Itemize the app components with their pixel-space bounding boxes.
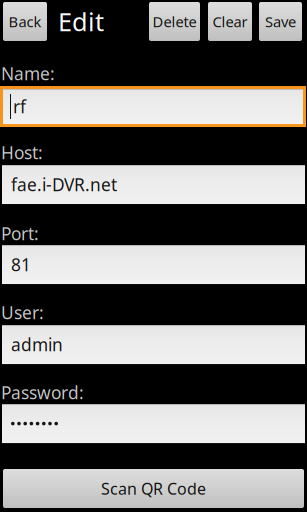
staticText: rf	[13, 95, 26, 118]
staticText: Back	[8, 12, 41, 31]
button[interactable]: 81	[2, 245, 305, 284]
button[interactable]	[2, 404, 305, 443]
button[interactable]: rf	[0, 86, 306, 127]
staticText: admin	[11, 333, 63, 356]
staticText: Host:	[1, 141, 43, 164]
staticText: Port:	[1, 222, 39, 245]
staticText: Edit	[58, 5, 104, 38]
staticText: Clear	[212, 12, 247, 31]
button[interactable]: Clear	[208, 2, 252, 41]
button[interactable]: Back	[3, 2, 47, 41]
staticText: Scan QR Code	[101, 478, 206, 499]
staticText: Save	[265, 12, 296, 31]
button[interactable]: fae.i-DVR.net	[2, 165, 305, 204]
staticText: Name:	[1, 62, 55, 85]
button[interactable]: Scan QR Code	[0, 469, 307, 512]
staticText: Delete	[152, 12, 196, 31]
staticText: User:	[1, 301, 44, 324]
staticText: fae.i-DVR.net	[11, 173, 117, 196]
staticText: Password:	[1, 381, 84, 404]
button[interactable]: Delete	[149, 2, 200, 41]
button[interactable]: Save	[259, 2, 302, 41]
button[interactable]: admin	[2, 325, 305, 364]
staticText: 81	[11, 253, 31, 276]
